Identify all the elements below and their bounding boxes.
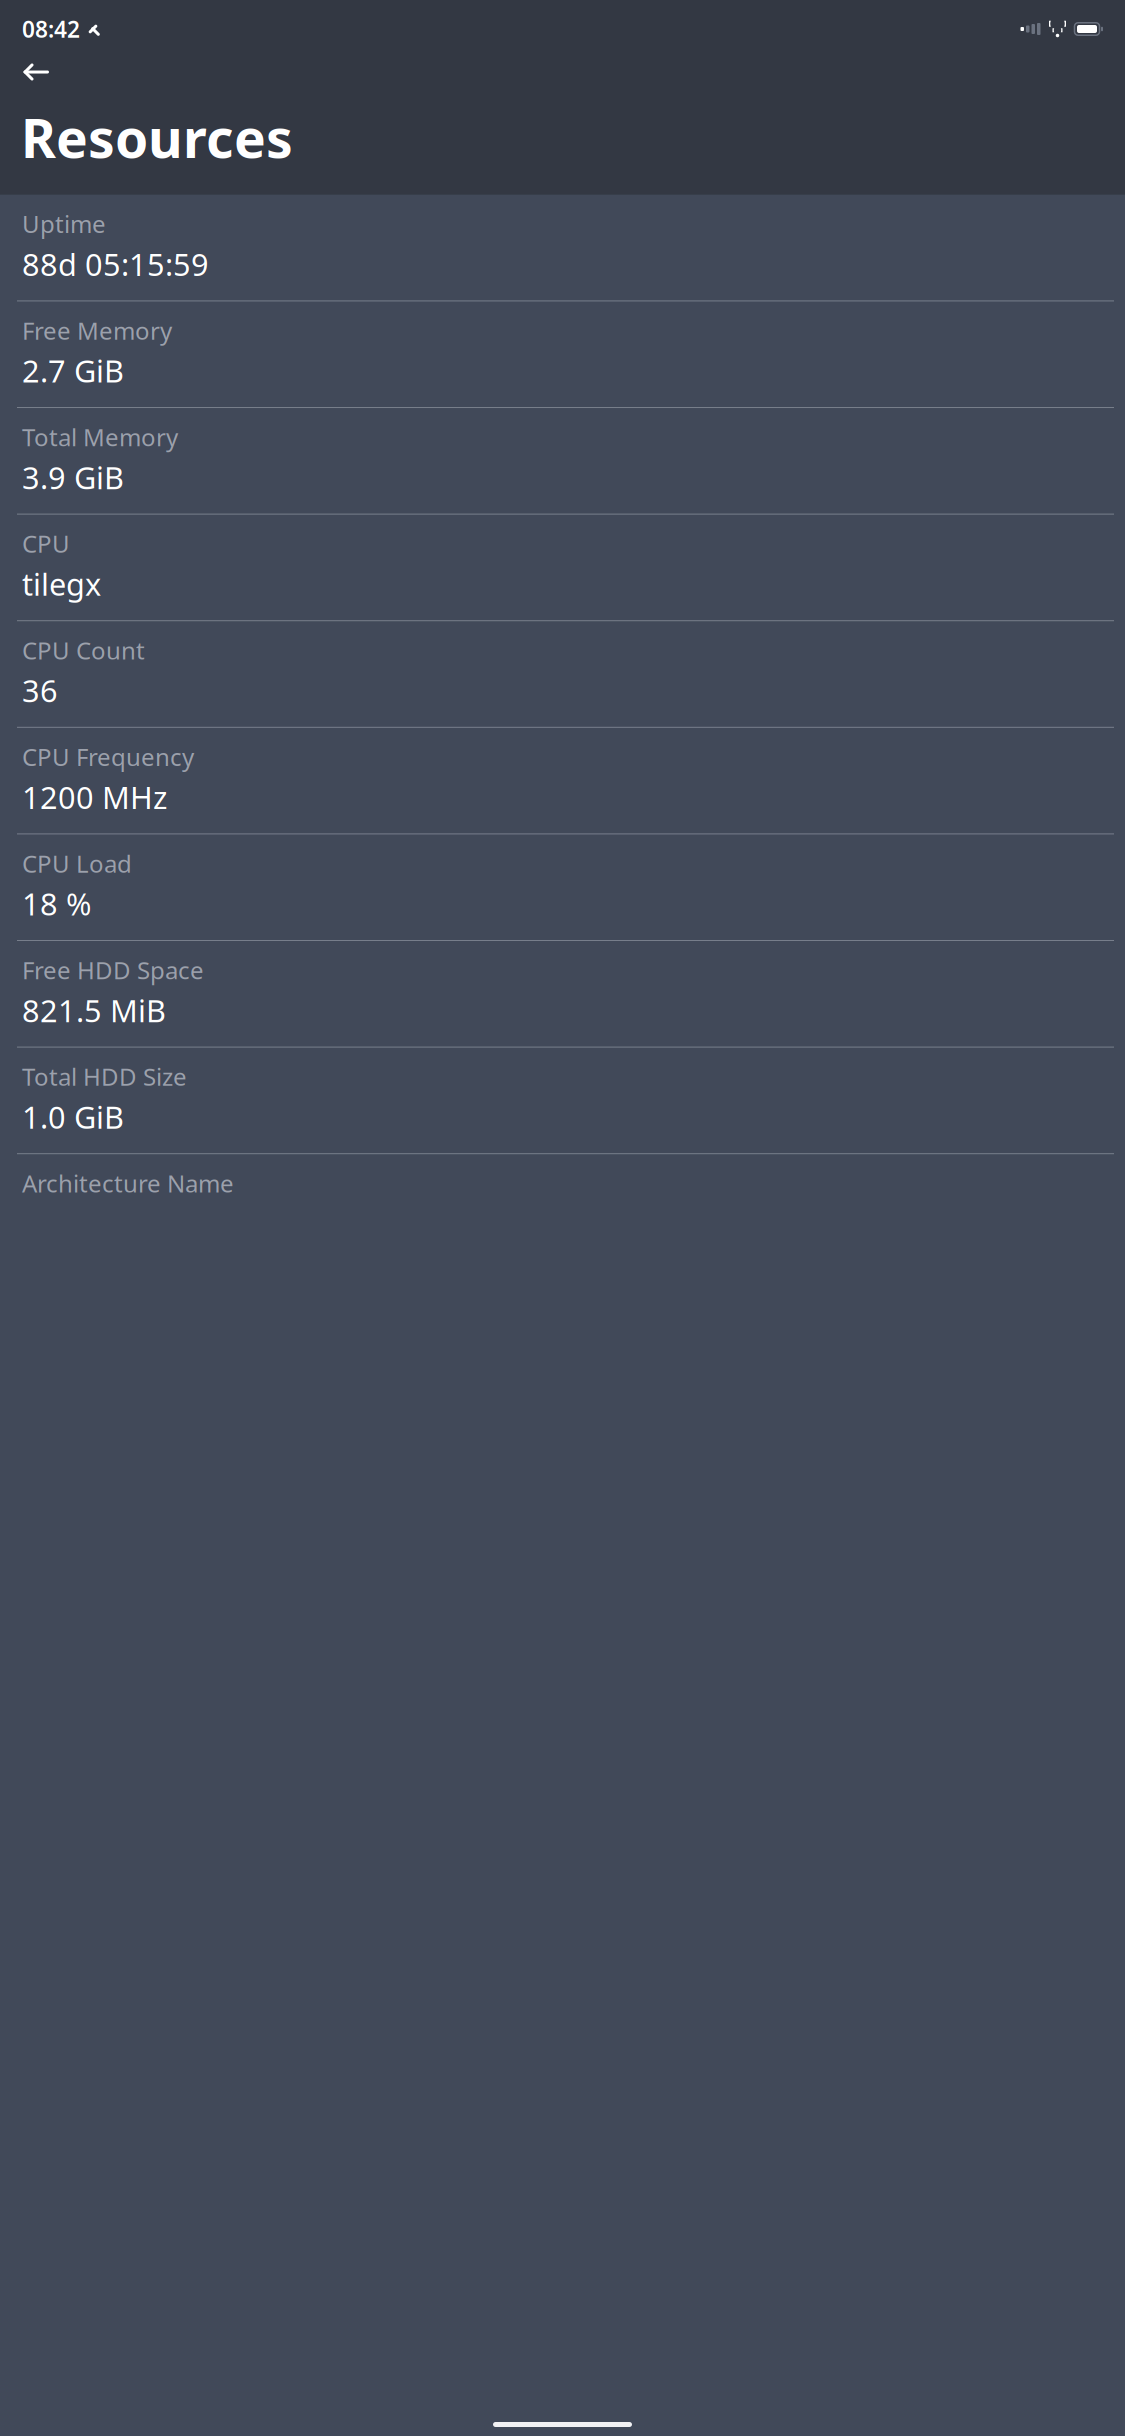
- staticText: tilegx: [22, 563, 101, 604]
- staticText: 1200 MHz: [22, 777, 167, 817]
- staticText: Total Memory: [22, 421, 178, 453]
- staticText: Resources: [21, 102, 293, 173]
- staticText: Free HDD Space: [22, 954, 204, 986]
- button[interactable]: Uptime: [11, 195, 1114, 300]
- staticText: 1.0 GiB: [22, 1096, 124, 1137]
- staticText: CPU Load: [22, 847, 132, 879]
- button[interactable]: CPU Frequency: [11, 728, 1114, 833]
- staticText: 821.5 MiB: [22, 990, 166, 1031]
- staticText: Free Memory: [22, 314, 172, 346]
- button[interactable]: Total HDD Size: [11, 1048, 1114, 1153]
- button[interactable]: Free HDD Space: [11, 941, 1114, 1047]
- staticText: Total HDD Size: [22, 1061, 187, 1092]
- staticText: 36: [22, 670, 58, 711]
- staticText: 3.9 GiB: [22, 457, 124, 498]
- button[interactable]: Free Memory: [11, 301, 1114, 407]
- staticText: 2.7 GiB: [22, 350, 124, 391]
- staticText: CPU: [22, 528, 70, 559]
- staticText: 88d 05:15:59: [22, 244, 209, 284]
- staticText: 08:42: [22, 14, 80, 44]
- staticText: Uptime: [22, 208, 106, 240]
- button[interactable]: CPU Count: [11, 621, 1114, 727]
- staticText: CPU Count: [22, 634, 145, 666]
- button[interactable]: CPU: [11, 515, 1114, 620]
- staticText: Architecture Name: [22, 1167, 234, 1199]
- staticText: 18 %: [22, 883, 91, 924]
- button[interactable]: Back: [11, 46, 63, 98]
- staticText: CPU Frequency: [22, 741, 194, 773]
- button[interactable]: Total Memory: [11, 408, 1114, 514]
- button[interactable]: CPU Load: [11, 834, 1114, 940]
